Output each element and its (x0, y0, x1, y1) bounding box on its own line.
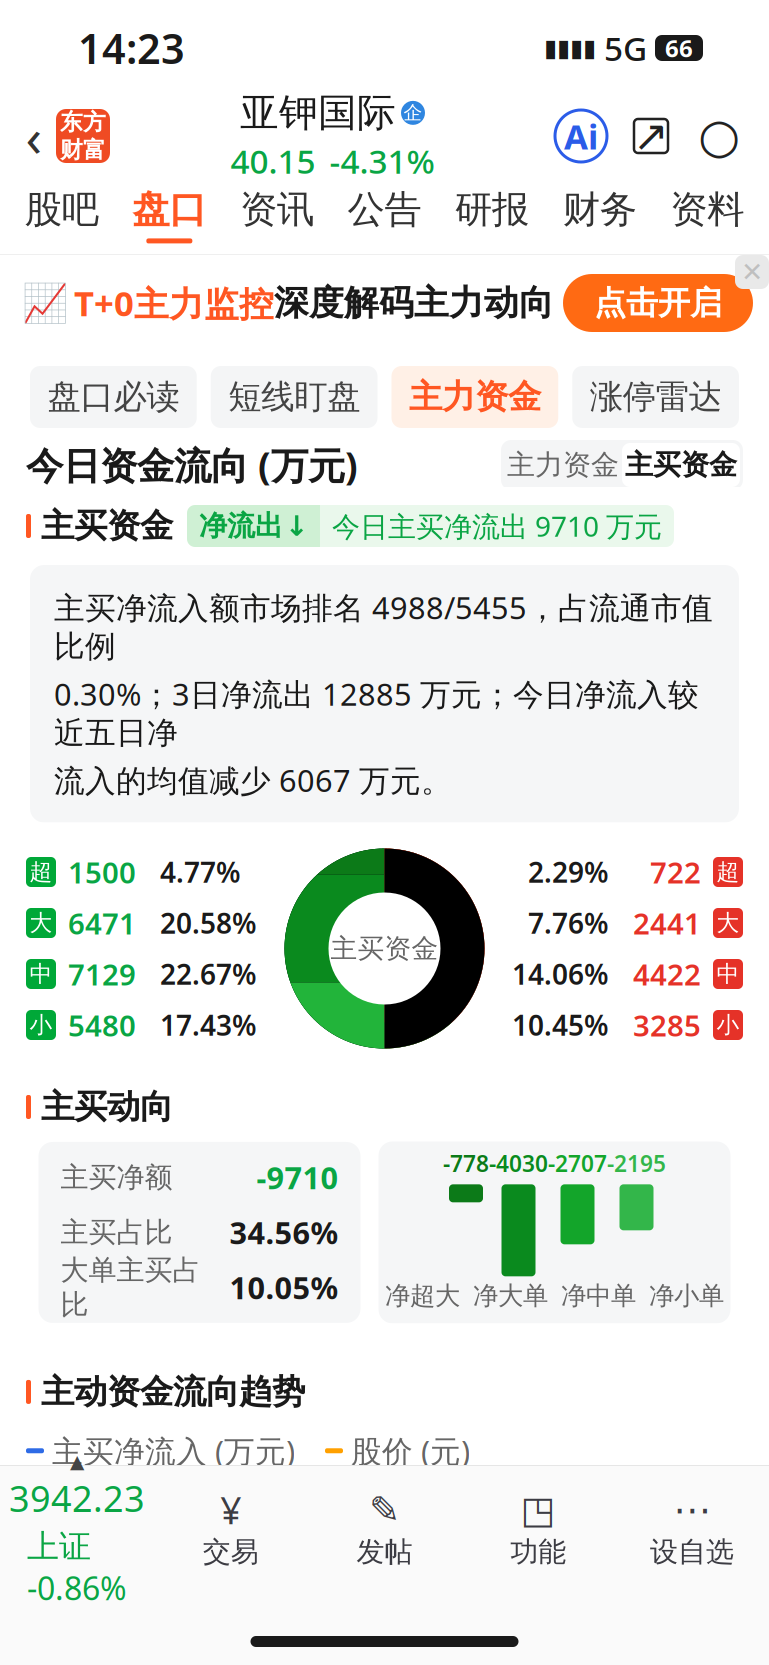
staticText: 股吧 (25, 187, 99, 232)
staticText: 4.77% (160, 853, 241, 891)
staticText: 盘口必读 (47, 376, 179, 417)
staticText: 净流出 (199, 509, 283, 543)
staticText: 资料 (670, 187, 744, 232)
button[interactable]: ¥ (154, 1491, 308, 1569)
staticText: 主力资金 (409, 376, 541, 417)
staticText: 超 (29, 858, 52, 886)
staticText: 7129 (68, 954, 136, 993)
staticText: 主动资金流向趋势 (41, 1371, 305, 1412)
staticText: 涨停雷达 (590, 376, 722, 417)
staticText: -2707 (548, 1148, 607, 1178)
staticText: 发帖 (356, 1535, 412, 1569)
staticText: 2.29% (528, 853, 609, 891)
staticText: ▲ (70, 1451, 84, 1472)
button[interactable]: 关闭广告 (735, 255, 769, 289)
staticText: 功能 (510, 1535, 566, 1569)
staticText: 大 (29, 909, 52, 937)
staticText: ¥ (220, 1485, 241, 1535)
staticText: 14:23 (78, 21, 185, 75)
staticText: 净超大 (385, 1280, 460, 1311)
staticText: 66 (665, 32, 693, 64)
staticText: 点击开启 (594, 283, 722, 323)
staticText: 小 (716, 1011, 739, 1039)
staticText: 2441 (633, 903, 701, 942)
button[interactable]: AI 助手 (555, 110, 607, 162)
button[interactable]: 点击开启 (563, 274, 753, 332)
staticText: 14.06% (512, 955, 609, 993)
staticText: 0.30%；3日净流出 12885 万元；今日净流入较近五日净 (54, 673, 699, 752)
staticText: 主力资金 (507, 448, 619, 482)
staticText: 盘口 (132, 187, 206, 232)
button[interactable]: 东方财富 (56, 109, 110, 163)
staticText: 亚钾国际 (240, 89, 396, 137)
button[interactable]: 短线盯盘 (211, 366, 378, 428)
staticText: 设自选 (650, 1535, 734, 1569)
button[interactable]: 涨停雷达 (572, 366, 739, 428)
staticText: 1500 (68, 852, 136, 891)
staticText: 20.58% (160, 904, 257, 942)
button[interactable]: 盘口必读 (30, 366, 197, 428)
button[interactable]: 研报 (438, 176, 546, 254)
staticText: 财务 (563, 187, 637, 232)
button[interactable]: 返回 (12, 106, 56, 166)
staticText: -778 (443, 1148, 489, 1178)
button[interactable]: 资料 (653, 176, 761, 254)
staticText: 10.45% (512, 1006, 609, 1044)
staticText: 📈 (22, 282, 68, 324)
staticText: 4422 (633, 954, 701, 993)
staticText: T+0主力监控 (74, 280, 274, 326)
staticText: ↗ (633, 112, 669, 160)
staticText: 小 (29, 1011, 52, 1039)
staticText: 34.56% (229, 1212, 338, 1253)
button[interactable]: 分享 (629, 112, 673, 160)
staticText: 超 (716, 858, 739, 886)
button[interactable]: ⋯ (615, 1491, 769, 1569)
staticText: 41.96 (26, 1504, 98, 1541)
button[interactable]: 主力资金 (391, 366, 558, 428)
staticText: 10.05% (229, 1267, 338, 1308)
staticText: ↓ (285, 510, 308, 542)
button[interactable]: 主力资金 (504, 443, 622, 487)
button[interactable]: ◳ (461, 1491, 615, 1569)
staticText: 主买净流入 (万元) (52, 1430, 295, 1471)
button[interactable]: 财务 (546, 176, 653, 254)
staticText: 主买资金 (330, 932, 438, 965)
staticText: 大单主买占比 (60, 1253, 200, 1322)
staticText: ‹ (25, 101, 42, 171)
staticText: 流入的均值减少 6067 万元。 (54, 760, 452, 800)
staticText: 今日资金流向 (万元) (26, 440, 358, 490)
button[interactable]: 盘口 (116, 176, 223, 254)
staticText: 主买净额 (60, 1160, 172, 1195)
staticText: 深度解码主力动向 (274, 282, 554, 324)
staticText: -9710 (256, 1157, 338, 1198)
staticText: 主买净流入额市场排名 4988/5455，占流通市值比例 (54, 587, 713, 665)
staticText: 财富 (60, 136, 106, 164)
staticText: 3942.23 (9, 1474, 145, 1522)
button[interactable]: 股吧 (8, 176, 116, 254)
staticText: 净小单 (649, 1280, 724, 1311)
staticText: 研报 (455, 187, 529, 232)
staticText: 主买资金 (41, 505, 173, 546)
staticText: 中 (29, 960, 52, 988)
button[interactable]: 公告 (331, 176, 438, 254)
staticText: 资讯 (240, 187, 314, 232)
staticText: 净中单 (561, 1280, 636, 1311)
staticText: 今日主买净流出 9710 万元 (332, 507, 662, 545)
staticText: 主买占比 (60, 1215, 172, 1250)
staticText: -2195 (607, 1148, 666, 1178)
staticText: ○ (698, 109, 740, 163)
staticText: 主买动向 (41, 1086, 173, 1127)
staticText: Ai (564, 113, 598, 159)
button[interactable]: ✎ (308, 1491, 461, 1569)
staticText: ✕ (741, 257, 763, 287)
button[interactable]: 主买资金 (622, 443, 740, 487)
button[interactable]: ▲ (0, 1451, 154, 1609)
staticText: ◳ (521, 1489, 556, 1531)
staticText: 6471 (68, 903, 136, 942)
button[interactable]: 搜索 (695, 112, 743, 160)
button[interactable]: 资讯 (223, 176, 331, 254)
staticText: 5480 (68, 1005, 136, 1044)
staticText: 40.15 (230, 139, 315, 183)
staticText: 3285 (633, 1005, 701, 1044)
staticText: 股价 (元) (351, 1430, 470, 1471)
